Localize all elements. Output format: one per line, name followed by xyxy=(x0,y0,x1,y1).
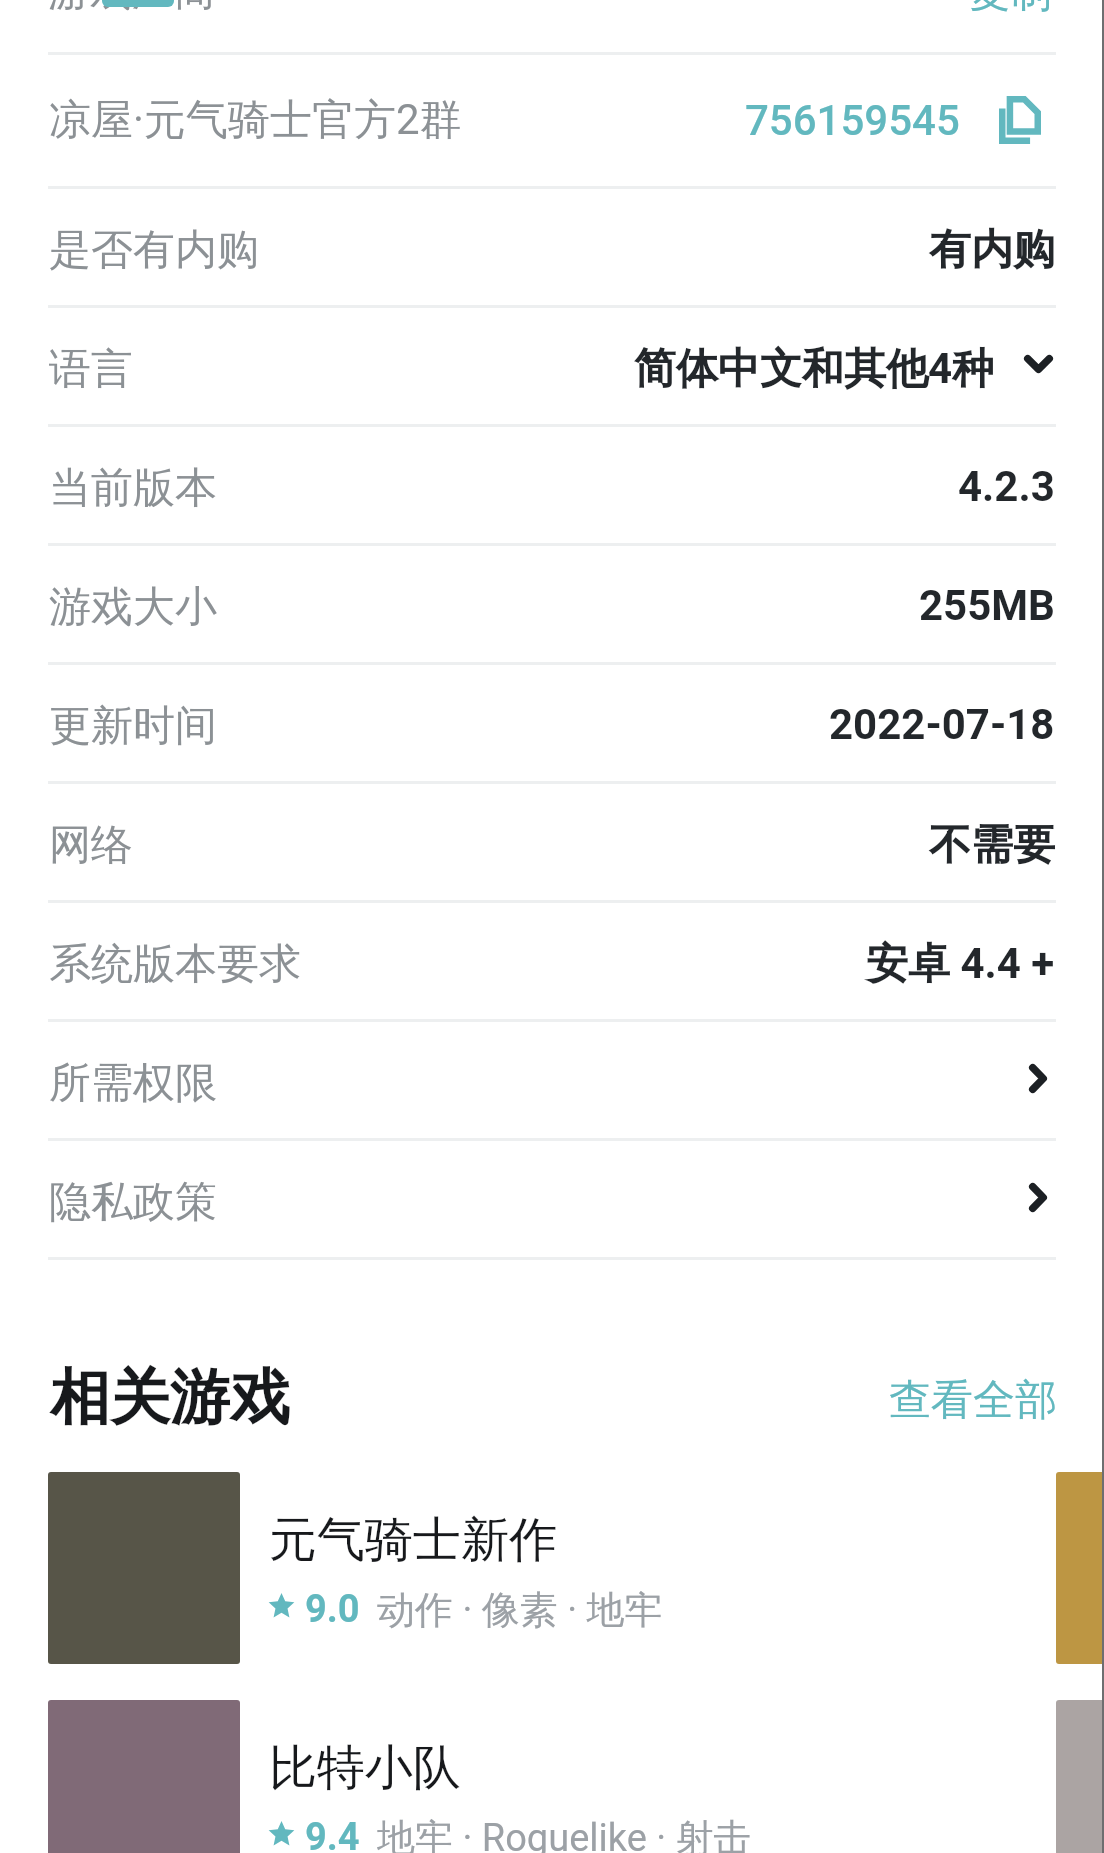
button[interactable]: 查看全部 xyxy=(889,1374,1057,1427)
staticText: 隐私政策 xyxy=(49,1176,217,1229)
staticText: 9.4 xyxy=(305,1815,360,1853)
button[interactable]: 所需权限 xyxy=(0,1022,1104,1138)
button[interactable]: 网络 xyxy=(0,784,1104,900)
staticText: 更新时间 xyxy=(49,700,217,753)
staticText: 简体中文和其他4种 xyxy=(634,343,995,396)
staticText: 游戏厂商 xyxy=(48,0,216,18)
staticText: 有内购 xyxy=(929,224,1055,277)
button[interactable]: 比特小队 xyxy=(0,1700,1056,1853)
staticText: 查看全部 xyxy=(889,1374,1057,1427)
button[interactable]: 是否有内购 xyxy=(0,189,1104,305)
button[interactable]: 系统版本要求 xyxy=(0,903,1104,1019)
staticText: 凉屋·元气骑士官方2群 xyxy=(49,94,462,147)
staticText: 地牢 · Roguelike · 射击 xyxy=(377,1814,752,1853)
button[interactable]: Open xyxy=(1004,1044,1072,1112)
staticText: 4.2.3 xyxy=(958,462,1055,511)
staticText: 相关游戏 xyxy=(50,1360,290,1436)
button[interactable]: 元气骑士新作 xyxy=(0,1472,1056,1664)
button[interactable]: 游戏厂商 xyxy=(48,0,216,31)
button[interactable]: Copy group number xyxy=(985,82,1055,158)
staticText: 是否有内购 xyxy=(49,224,259,277)
staticText: 复制 xyxy=(968,0,1052,19)
staticText: 语言 xyxy=(49,343,133,396)
staticText: 安卓 4.4 + xyxy=(866,938,1055,991)
staticText: 255MB xyxy=(919,581,1055,630)
staticText: 不需要 xyxy=(929,819,1055,872)
button[interactable]: 隐私政策 xyxy=(0,1141,1104,1257)
button[interactable]: 凉屋·元气骑士官方2群 xyxy=(0,55,1104,186)
staticText: 比特小队 xyxy=(269,1738,461,1798)
staticText: 动作 · 像素 · 地牢 xyxy=(377,1586,663,1632)
staticText: 756159545 xyxy=(745,96,960,145)
staticText: 网络 xyxy=(49,819,133,872)
staticText: 所需权限 xyxy=(49,1057,217,1110)
staticText: 系统版本要求 xyxy=(49,938,301,991)
button[interactable]: 语言 xyxy=(0,308,1104,424)
button[interactable]: Expand languages xyxy=(1004,330,1072,398)
button[interactable]: 当前版本 xyxy=(0,427,1104,543)
staticText: 当前版本 xyxy=(49,462,217,515)
button[interactable]: 更新时间 xyxy=(0,665,1104,781)
button[interactable]: 游戏大小 xyxy=(0,546,1104,662)
staticText: 元气骑士新作 xyxy=(269,1510,557,1570)
staticText: 9.0 xyxy=(305,1587,360,1632)
staticText: 2022-07-18 xyxy=(829,700,1055,749)
button[interactable]: Open xyxy=(1004,1163,1072,1231)
staticText: 游戏大小 xyxy=(49,581,217,634)
